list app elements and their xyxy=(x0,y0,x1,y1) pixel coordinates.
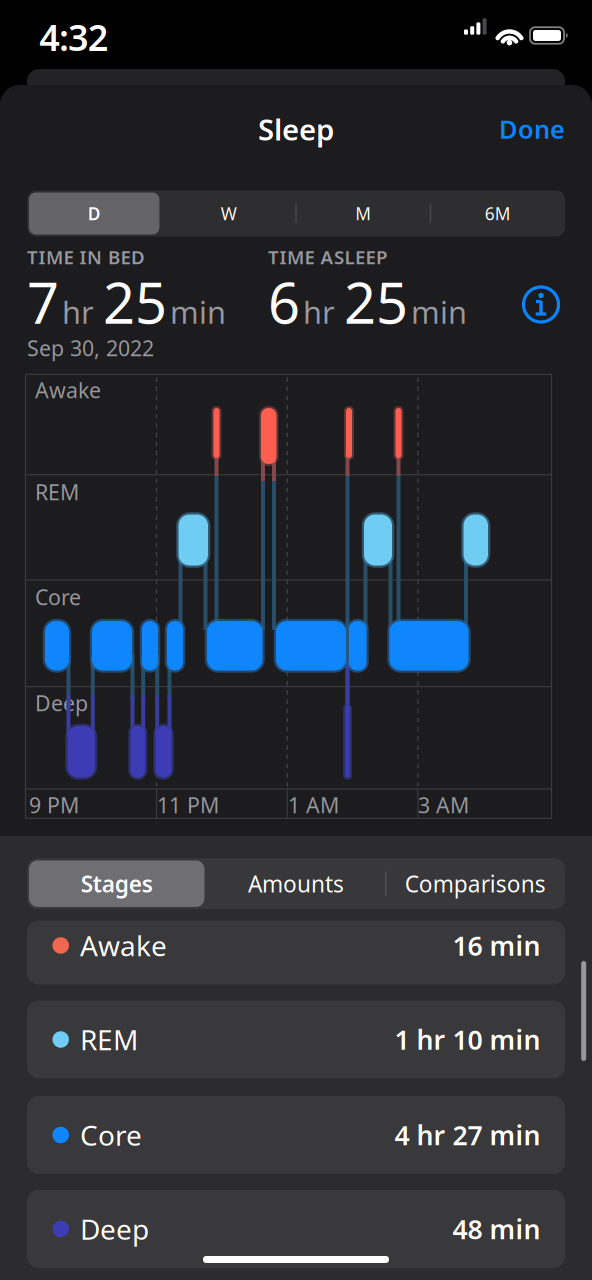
staticText: Deep xyxy=(35,689,88,717)
staticText: min xyxy=(411,291,467,332)
staticText: TIME IN BED xyxy=(27,245,145,269)
staticText: 11 PM xyxy=(157,791,219,819)
staticText: REM xyxy=(80,1021,138,1058)
button[interactable]: 6M xyxy=(433,192,563,234)
button[interactable]: Stages xyxy=(29,860,204,907)
staticText: 1 AM xyxy=(288,791,339,819)
staticText: Amounts xyxy=(248,869,344,899)
button[interactable]: Awake xyxy=(0,0,592,1280)
staticText: Comparisons xyxy=(405,869,546,899)
staticText: Stages xyxy=(81,869,153,899)
staticText: hr xyxy=(62,291,94,332)
staticText: M xyxy=(355,202,371,225)
button[interactable]: D xyxy=(29,192,159,234)
staticText: REM xyxy=(35,478,79,506)
staticText: Core xyxy=(80,1116,142,1154)
staticText: 4:32 xyxy=(39,13,109,61)
staticText: Sep 30, 2022 xyxy=(27,334,154,362)
button[interactable]: About Sleep Stages xyxy=(523,287,558,322)
staticText: Core xyxy=(35,583,81,611)
staticText: hr xyxy=(303,291,335,332)
button[interactable]: Done xyxy=(425,112,565,146)
staticText: 1 hr 10 min xyxy=(394,1022,540,1057)
staticText: D xyxy=(88,202,101,225)
staticText: 16 min xyxy=(452,928,540,963)
staticText: 3 AM xyxy=(418,791,469,819)
staticText: Deep xyxy=(80,1210,149,1248)
staticText: 9 PM xyxy=(29,791,79,819)
staticText: min xyxy=(170,291,226,332)
staticText: 6M xyxy=(485,202,511,225)
button[interactable]: Deep xyxy=(0,0,592,1280)
button[interactable]: Comparisons xyxy=(390,861,560,907)
button[interactable]: Amounts xyxy=(211,861,381,907)
staticText: W xyxy=(221,202,237,225)
staticText: 48 min xyxy=(452,1211,540,1247)
button[interactable]: M xyxy=(298,192,428,234)
staticText: TIME ASLEEP xyxy=(268,245,387,269)
staticText: 25 xyxy=(103,265,167,339)
staticText: Done xyxy=(499,112,565,146)
staticText: Sleep xyxy=(258,109,334,148)
staticText: 6 xyxy=(268,265,300,339)
button[interactable]: REM xyxy=(0,0,592,1280)
staticText: Awake xyxy=(35,376,101,404)
button[interactable]: Core xyxy=(0,0,592,1280)
staticText: 7 xyxy=(27,265,59,339)
staticText: 25 xyxy=(344,265,408,339)
button[interactable]: W xyxy=(164,192,294,234)
staticText: Awake xyxy=(80,927,167,964)
staticText: 4 hr 27 min xyxy=(394,1117,540,1153)
